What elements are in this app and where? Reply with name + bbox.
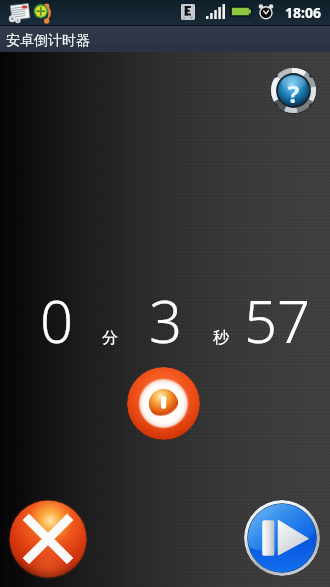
button[interactable]: Help xyxy=(270,67,317,114)
staticText: 0 xyxy=(40,281,74,360)
staticText: 秒 xyxy=(213,328,229,348)
button[interactable]: Start timer xyxy=(127,367,200,440)
button[interactable]: Pause xyxy=(244,500,320,576)
staticText: 安卓倒计时器 xyxy=(6,32,90,50)
staticText: ? xyxy=(270,77,317,114)
staticText: 分 xyxy=(102,328,118,348)
staticText: 18:06 xyxy=(285,3,321,22)
button[interactable]: Cancel xyxy=(8,499,88,579)
staticText: 57 xyxy=(244,281,311,360)
staticText: 3 xyxy=(149,281,183,360)
